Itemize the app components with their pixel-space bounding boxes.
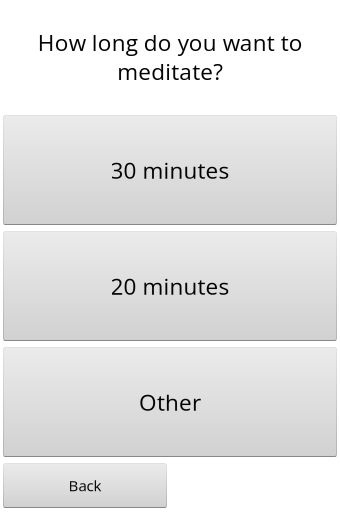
staticText: 20 minutes [110, 271, 229, 301]
staticText: 30 minutes [110, 155, 229, 185]
staticText: How long do you want to meditate? [37, 27, 302, 87]
button[interactable]: Other [3, 347, 337, 457]
button[interactable]: 30 minutes [3, 115, 337, 225]
button[interactable]: Back [3, 463, 167, 508]
staticText: Back [68, 475, 101, 496]
button[interactable]: 20 minutes [3, 231, 337, 341]
staticText: Other [139, 387, 201, 417]
